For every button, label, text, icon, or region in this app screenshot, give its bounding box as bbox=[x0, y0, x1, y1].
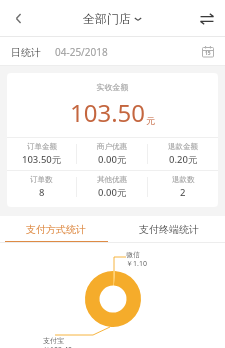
button[interactable]: 全部门店 bbox=[79, 7, 146, 30]
staticText: 商户优惠 bbox=[97, 142, 127, 151]
staticText: 0.00元 bbox=[98, 153, 127, 166]
staticText: 支付终端统计 bbox=[139, 223, 199, 236]
staticText: 退款金额 bbox=[168, 142, 198, 151]
button[interactable]: 退款数 bbox=[148, 171, 218, 203]
button[interactable]: 支付终端统计 bbox=[112, 216, 225, 243]
staticText: 订单数 bbox=[30, 175, 53, 184]
button[interactable]: 日统计 bbox=[11, 46, 41, 59]
staticText: 103.50 bbox=[70, 96, 146, 129]
button[interactable]: 退款金额 bbox=[148, 138, 218, 170]
staticText: 其他优惠 bbox=[97, 175, 127, 184]
button[interactable]: 订单金额 bbox=[7, 138, 76, 170]
staticText: 103.50元 bbox=[22, 153, 62, 166]
staticText: 支付宝 bbox=[43, 336, 64, 345]
staticText: 元 bbox=[146, 115, 155, 126]
button[interactable]: Back bbox=[0, 0, 37, 37]
staticText: 04-25/2018 bbox=[55, 45, 108, 59]
staticText: 8 bbox=[39, 186, 45, 199]
staticText: 支付方式统计 bbox=[26, 223, 86, 236]
button[interactable]: Pick date bbox=[198, 42, 218, 62]
staticText: 微信 bbox=[126, 250, 140, 259]
staticText: 2 bbox=[180, 186, 186, 199]
staticText: 订单金额 bbox=[27, 142, 57, 151]
button[interactable]: Switch view bbox=[188, 0, 225, 37]
staticText: 0.00元 bbox=[98, 186, 127, 199]
staticText: 全部门店 bbox=[83, 11, 131, 26]
staticText: ￥1.10 bbox=[126, 259, 147, 269]
button[interactable]: 订单数 bbox=[7, 171, 76, 203]
staticText: 日统计 bbox=[11, 46, 41, 59]
staticText: 15 bbox=[205, 50, 211, 57]
button[interactable]: 商户优惠 bbox=[77, 138, 147, 170]
button[interactable]: 支付方式统计 bbox=[0, 216, 112, 243]
staticText: 实收金额 bbox=[7, 82, 218, 92]
staticText: 0.20元 bbox=[169, 153, 198, 166]
button[interactable]: 其他优惠 bbox=[77, 171, 147, 203]
staticText: 退款数 bbox=[172, 175, 195, 184]
staticText: ￥102.40 bbox=[43, 345, 72, 348]
